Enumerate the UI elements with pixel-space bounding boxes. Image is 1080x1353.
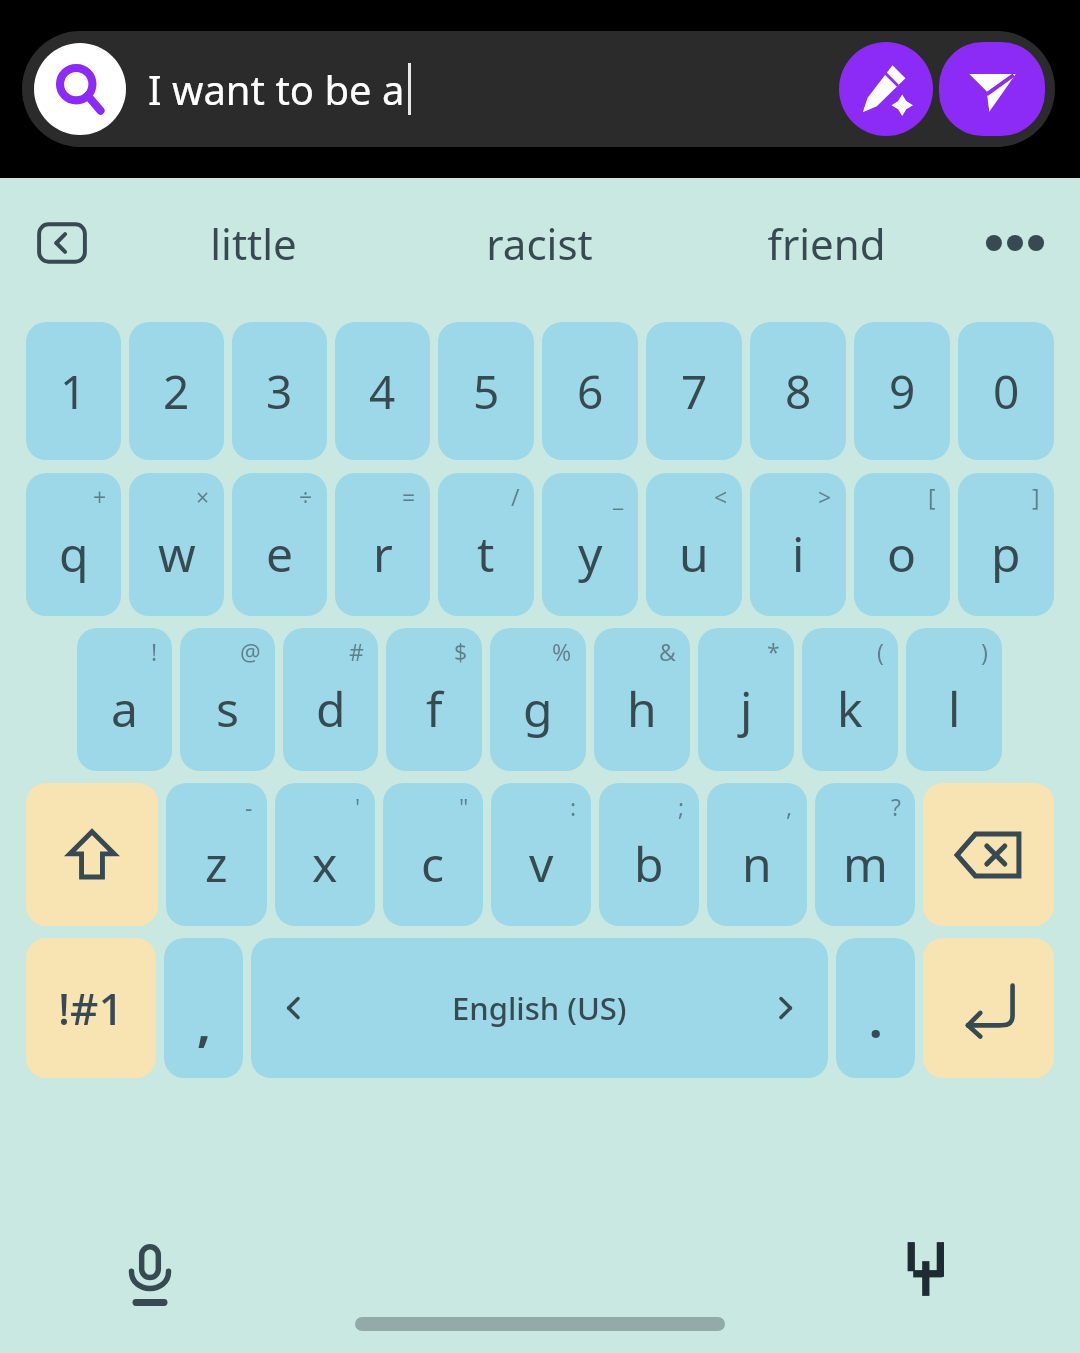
- button[interactable]: little: [110, 178, 396, 308]
- button[interactable]: @: [180, 628, 275, 771]
- staticText: h: [627, 676, 657, 741]
- button[interactable]: !#1: [26, 938, 156, 1078]
- button[interactable]: Period: [836, 938, 915, 1078]
- staticText: 2: [163, 360, 190, 423]
- button[interactable]: English (US): [251, 938, 828, 1078]
- button[interactable]: ÷: [232, 473, 327, 616]
- button[interactable]: 1: [26, 322, 121, 460]
- button[interactable]: 5: [438, 322, 534, 460]
- staticText: f: [426, 676, 443, 741]
- staticText: z: [205, 831, 228, 896]
- staticText: racist: [486, 215, 593, 272]
- staticText: ]: [1032, 481, 1040, 512]
- button[interactable]: :: [491, 783, 591, 926]
- staticText: d: [316, 676, 346, 741]
- button[interactable]: 2: [129, 322, 224, 460]
- staticText: 9: [889, 360, 916, 423]
- button[interactable]: _: [542, 473, 638, 616]
- staticText: English (US): [452, 987, 627, 1029]
- button[interactable]: #: [283, 628, 378, 771]
- button[interactable]: AI compose: [839, 42, 933, 136]
- button[interactable]: /: [438, 473, 534, 616]
- button[interactable]: [: [854, 473, 950, 616]
- button[interactable]: =: [335, 473, 430, 616]
- button[interactable]: 7: [646, 322, 742, 460]
- staticText: 8: [785, 360, 812, 423]
- button[interactable]: >: [750, 473, 846, 616]
- button[interactable]: $: [386, 628, 482, 771]
- button[interactable]: 0: [958, 322, 1054, 460]
- staticText: +: [93, 481, 107, 512]
- button[interactable]: ): [906, 628, 1002, 771]
- button[interactable]: ": [383, 783, 483, 926]
- button[interactable]: ?: [815, 783, 915, 926]
- staticText: [: [928, 481, 936, 512]
- staticText: u: [679, 521, 709, 586]
- staticText: ,: [786, 791, 793, 822]
- button[interactable]: 3: [232, 322, 327, 460]
- button[interactable]: Backspace: [923, 783, 1054, 926]
- staticText: (: [877, 636, 884, 667]
- staticText: c: [421, 831, 445, 896]
- button[interactable]: 8: [750, 322, 846, 460]
- button[interactable]: *: [698, 628, 794, 771]
- staticText: n: [742, 831, 772, 896]
- button[interactable]: <: [646, 473, 742, 616]
- button[interactable]: racist: [396, 178, 683, 308]
- staticText: %: [552, 636, 572, 667]
- button[interactable]: -: [166, 783, 267, 926]
- staticText: @: [240, 636, 261, 667]
- button[interactable]: Search: [34, 43, 126, 135]
- button[interactable]: Keyboard settings: [902, 1241, 958, 1297]
- button[interactable]: +: [26, 473, 121, 616]
- button[interactable]: ×: [129, 473, 224, 616]
- button[interactable]: (: [802, 628, 898, 771]
- staticText: s: [216, 676, 239, 741]
- staticText: <: [714, 481, 728, 512]
- button[interactable]: !: [77, 628, 172, 771]
- button[interactable]: %: [490, 628, 586, 771]
- button[interactable]: Voice input: [118, 1243, 182, 1307]
- button[interactable]: More options: [980, 208, 1050, 278]
- staticText: l: [948, 676, 961, 741]
- button[interactable]: ;: [599, 783, 699, 926]
- staticText: ÷: [299, 481, 313, 512]
- staticText: v: [529, 831, 554, 896]
- staticText: i: [792, 521, 805, 586]
- button[interactable]: 4: [335, 322, 430, 460]
- staticText: >: [818, 481, 832, 512]
- staticText: 0: [993, 360, 1020, 423]
- button[interactable]: friend: [683, 178, 970, 308]
- staticText: ": [459, 791, 469, 822]
- button[interactable]: Send: [939, 42, 1045, 136]
- staticText: t: [477, 521, 495, 586]
- button[interactable]: ,: [707, 783, 807, 926]
- staticText: w: [158, 521, 196, 586]
- staticText: -: [245, 791, 253, 822]
- button[interactable]: ]: [958, 473, 1054, 616]
- staticText: y: [578, 521, 603, 586]
- staticText: k: [837, 676, 863, 741]
- staticText: 6: [577, 360, 604, 423]
- button[interactable]: &: [594, 628, 690, 771]
- button[interactable]: 6: [542, 322, 638, 460]
- button[interactable]: 9: [854, 322, 950, 460]
- staticText: p: [991, 521, 1021, 586]
- staticText: :: [570, 791, 577, 822]
- staticText: 3: [266, 360, 293, 423]
- staticText: 5: [473, 360, 500, 423]
- staticText: 1: [60, 360, 87, 423]
- button[interactable]: Comma: [164, 938, 243, 1078]
- button[interactable]: Enter: [923, 938, 1054, 1078]
- staticText: a: [111, 676, 138, 741]
- staticText: ;: [678, 791, 685, 822]
- staticText: j: [740, 676, 753, 741]
- staticText: .: [869, 987, 883, 1052]
- staticText: ): [981, 636, 988, 667]
- staticText: g: [523, 676, 553, 741]
- staticText: b: [634, 831, 664, 896]
- button[interactable]: Expand toolbar: [36, 217, 88, 269]
- button[interactable]: Shift: [26, 783, 158, 926]
- button[interactable]: ': [275, 783, 375, 926]
- staticText: o: [887, 521, 917, 586]
